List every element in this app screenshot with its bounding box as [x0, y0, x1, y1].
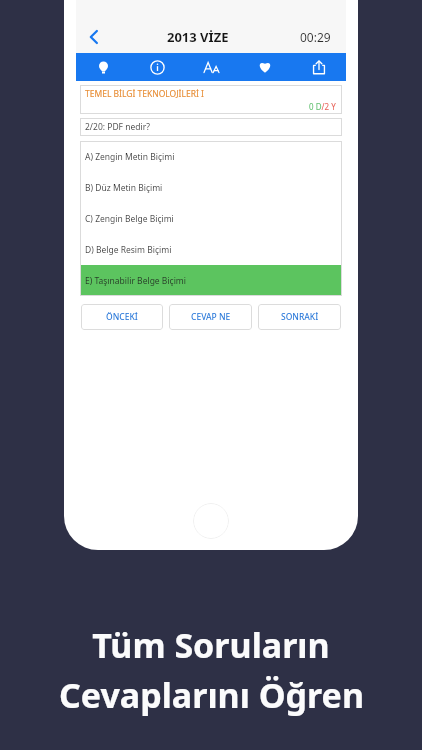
staticText: 00:29	[300, 29, 331, 45]
staticText: 2013 VİZE	[167, 28, 229, 46]
staticText: D) Belge Resim Biçimi	[85, 244, 172, 256]
button[interactable]: Font size	[184, 53, 238, 81]
button[interactable]: A) Zengin Metin Biçimi	[80, 141, 342, 172]
staticText: C) Zengin Belge Biçimi	[85, 213, 174, 225]
staticText: A) Zengin Metin Biçimi	[85, 151, 175, 163]
button[interactable]: Favorite	[238, 53, 292, 81]
button[interactable]: D) Belge Resim Biçimi	[80, 234, 342, 265]
button[interactable]: E) Taşınabilir Belge Biçimi	[80, 265, 342, 296]
button[interactable]: Hint	[76, 53, 130, 81]
button[interactable]: B) Düz Metin Biçimi	[80, 172, 342, 203]
staticText: SONRAKİ	[281, 311, 319, 323]
staticText: 2/20: PDF nedir?	[85, 121, 150, 133]
button[interactable]: SONRAKİ	[258, 304, 341, 330]
staticText: E) Taşınabilir Belge Biçimi	[85, 275, 186, 287]
button[interactable]: C) Zengin Belge Biçimi	[80, 203, 342, 234]
button[interactable]: Info	[130, 53, 184, 81]
staticText: Tüm Soruların	[92, 622, 330, 668]
staticText: B) Düz Metin Biçimi	[85, 182, 163, 194]
staticText: CEVAP NE	[191, 311, 231, 323]
button[interactable]: ÖNCEKİ	[81, 304, 163, 330]
staticText: TEMEL BİLGİ TEKNOLOJİLERİ I	[85, 88, 204, 100]
button[interactable]: Share	[292, 53, 346, 81]
staticText: ÖNCEKİ	[106, 311, 138, 323]
button[interactable]: Back	[76, 20, 112, 53]
button[interactable]: CEVAP NE	[169, 304, 252, 330]
staticText: 0 D/2 Y	[309, 101, 336, 112]
staticText: Cevaplarını Öğren	[59, 672, 364, 718]
